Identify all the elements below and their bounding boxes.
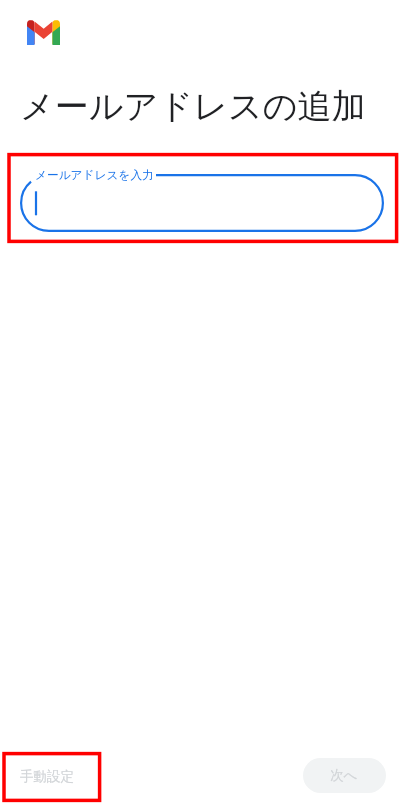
button[interactable]: メールアドレスを入力 [20,174,384,232]
button[interactable]: 次へ [303,758,386,793]
button[interactable]: 手動設定 [8,758,94,793]
staticText: メールアドレスの追加 [20,85,366,128]
staticText: 手動設定 [20,768,74,785]
other: Gmail [27,20,60,44]
staticText: 次へ [330,767,358,784]
staticText: メールアドレスを入力 [35,168,154,183]
